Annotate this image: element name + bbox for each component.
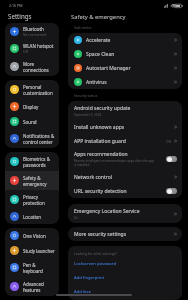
button[interactable]: WLAN hotspot [5,40,59,57]
staticText: Autostart Manager [86,65,131,72]
staticText: Pen & keyboard [23,262,43,274]
button[interactable]: Space Clean [68,47,182,61]
staticText: Privacy protection [23,194,45,206]
button[interactable]: Pen & keyboard [5,258,59,277]
button[interactable]: Install unknown apps [68,120,182,134]
staticText: Advanced features [23,281,44,293]
button[interactable]: Add fingerprint [74,275,176,281]
staticText: Safety & emergency [71,13,126,21]
staticText: One Vision [23,233,46,239]
staticText: Space Clean [86,51,115,58]
button[interactable]: Location [5,209,59,224]
button[interactable]: Autostart Manager [68,61,182,75]
staticText: Display [23,104,39,110]
button[interactable]: Display [5,99,59,114]
button[interactable]: Emergency Location Service [68,204,182,223]
staticText: Sound [23,119,37,125]
button[interactable]: APP installation guard [68,134,182,148]
staticText: More security settings [74,231,127,238]
button[interactable]: URL security detection [68,184,182,198]
staticText: September 5, 2024 [74,113,102,117]
staticText: Safe center [74,25,92,30]
staticText: Security status [74,93,98,98]
staticText: Notifications & control center [23,133,55,145]
staticText: URL security detection [74,188,127,195]
staticText: Settings [8,12,32,20]
staticText: Android security update [74,105,131,112]
staticText: Bluetooth [23,26,44,32]
staticText: Antivirus [86,79,107,86]
button[interactable]: Network control [68,170,182,184]
button[interactable]: Bluetooth [5,23,59,40]
staticText: Network control [74,174,113,181]
staticText: Apps recommendation [74,151,128,158]
button[interactable]: Personal customization [5,80,59,99]
button[interactable]: Advanced features [5,277,59,296]
button[interactable]: More security settings [68,227,182,241]
staticText: Accelerate [86,37,111,44]
button[interactable]: Sound [5,114,59,129]
staticText: Study launcher [23,248,55,254]
button[interactable]: More connections [5,57,59,76]
staticText: Personal customization [23,84,53,96]
button[interactable]: Study launcher [5,243,59,258]
button[interactable]: One Vision [5,228,59,243]
staticText: Location [23,214,42,220]
staticText: Off [23,49,28,54]
button[interactable]: Notifications & control center [5,129,59,148]
button[interactable]: Safety & emergency [5,171,59,190]
staticText: APP installation guard [74,138,126,145]
button[interactable]: Privacy protection [5,190,59,209]
staticText: 2:16 PM [9,3,23,8]
button[interactable]: Antivirus [68,75,182,89]
staticText: WLAN hotspot [23,43,54,49]
button[interactable]: Android security update [68,101,182,120]
staticText: Biometrics & passwords [23,156,50,168]
staticText: Emergency Location Service [74,208,140,215]
staticText: Safety & emergency [23,175,47,187]
button[interactable]: Biometrics & passwords [5,152,59,171]
staticText: More connections [23,61,49,73]
button[interactable]: Apps recommendation [68,148,182,170]
button[interactable]: Add face [74,289,176,295]
staticText: Receive intelligent recommendation apps … [74,159,154,167]
button[interactable]: Accelerate [68,33,182,47]
staticText: Install unknown apps [74,124,125,131]
staticText: Off [166,139,171,144]
staticText: On [74,216,79,220]
staticText: Looking for other settings? [74,251,117,256]
button[interactable]: Lockscreen password [74,261,176,267]
staticText: Not connected [23,32,47,37]
